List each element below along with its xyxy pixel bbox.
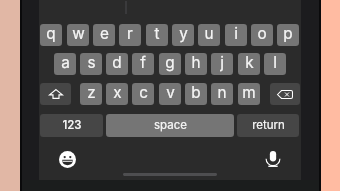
staticText: q <box>46 24 56 43</box>
staticText: f <box>140 53 146 72</box>
staticText: m <box>242 83 256 102</box>
staticText: g <box>165 53 175 72</box>
staticText: s <box>87 53 96 72</box>
staticText: w <box>72 24 85 43</box>
button[interactable]: 123 <box>40 114 103 137</box>
button[interactable]: w <box>67 24 89 46</box>
button[interactable]: space <box>106 114 234 137</box>
button[interactable]: p <box>277 24 299 46</box>
staticText: h <box>191 53 201 72</box>
button[interactable]: Dictate <box>261 147 285 171</box>
button[interactable]: y <box>172 24 194 46</box>
button[interactable]: return <box>237 114 299 137</box>
button[interactable]: l <box>264 53 286 75</box>
button[interactable]: h <box>185 53 207 75</box>
staticText: v <box>166 83 175 102</box>
button[interactable]: o <box>251 24 273 46</box>
button[interactable]: m <box>238 83 260 105</box>
staticText: j <box>220 53 224 72</box>
button[interactable]: z <box>80 83 102 105</box>
button[interactable]: u <box>198 24 220 46</box>
staticText: a <box>61 53 70 72</box>
staticText: c <box>139 83 148 102</box>
button[interactable]: b <box>185 83 207 105</box>
button[interactable]: i <box>225 24 247 46</box>
staticText: e <box>100 24 109 43</box>
staticText: z <box>87 83 96 102</box>
button[interactable]: d <box>106 53 128 75</box>
button[interactable]: q <box>40 24 62 46</box>
button[interactable]: Emoji <box>55 147 79 171</box>
staticText: b <box>191 83 201 102</box>
button[interactable]: g <box>159 53 181 75</box>
button[interactable]: c <box>132 83 154 105</box>
button[interactable]: x <box>106 83 128 105</box>
button[interactable]: Delete <box>270 83 300 105</box>
button[interactable]: Shift <box>40 83 71 105</box>
staticText: space <box>154 118 187 132</box>
staticText: d <box>112 53 122 72</box>
staticText: u <box>204 24 214 43</box>
staticText: r <box>127 24 133 43</box>
staticText: o <box>257 24 267 43</box>
staticText: k <box>245 53 254 72</box>
button[interactable]: n <box>211 83 233 105</box>
button[interactable]: s <box>80 53 102 75</box>
staticText: p <box>283 24 293 43</box>
button[interactable]: e <box>93 24 115 46</box>
staticText: i <box>234 24 238 43</box>
staticText: x <box>113 83 122 102</box>
button[interactable]: f <box>132 53 154 75</box>
staticText: t <box>154 24 160 43</box>
button[interactable]: v <box>159 83 181 105</box>
button[interactable]: j <box>211 53 233 75</box>
button[interactable]: t <box>146 24 168 46</box>
staticText: y <box>179 24 188 43</box>
staticText: 123 <box>62 118 82 132</box>
staticText: n <box>217 83 227 102</box>
button[interactable]: k <box>238 53 260 75</box>
staticText: l <box>273 53 277 72</box>
button[interactable]: a <box>54 53 76 75</box>
staticText: return <box>252 118 285 132</box>
button[interactable]: r <box>119 24 141 46</box>
